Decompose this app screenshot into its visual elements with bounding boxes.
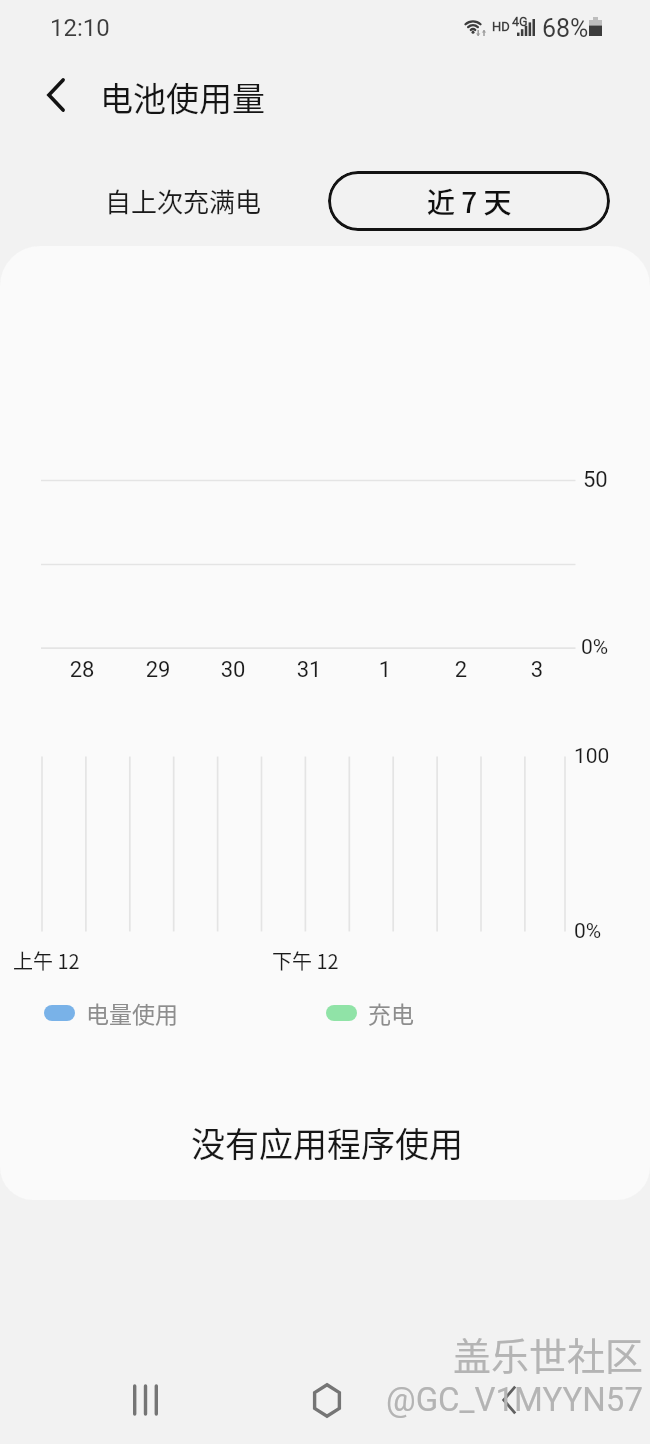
staticText: 电池使用量 [100,73,265,121]
staticText: 0% [574,919,602,944]
staticText: 充电 [368,996,414,1029]
staticText: 100 [574,744,610,769]
staticText: 2 [401,657,521,683]
staticText: 12:10 [50,14,110,42]
staticText: 自上次充满电 [105,182,262,220]
button[interactable]: 近 7 天 [328,171,610,231]
staticText: 31 [249,657,369,683]
button[interactable]: Back [24,63,88,127]
staticText: 上午 12 [13,946,80,975]
staticText: 盖乐世社区 [453,1326,644,1381]
staticText: 近 7 天 [427,181,512,222]
staticText: 3 [477,657,597,683]
other: Wi-Fi [460,14,490,38]
staticText: @GC_V1MYYN57 [386,1380,643,1419]
staticText: 1 [325,657,445,683]
staticText: 0% [581,635,609,660]
staticText: 68% [542,14,589,43]
button[interactable]: Home [289,1362,365,1438]
staticText: 28 [22,657,142,683]
button[interactable]: Back [471,1362,547,1438]
button[interactable]: 自上次充满电 [105,182,262,220]
button[interactable]: Recent apps [107,1362,183,1438]
staticText: 电量使用 [86,996,178,1029]
staticText: 29 [98,657,218,683]
staticText: 50 [583,467,608,493]
staticText: 下午 12 [272,946,339,975]
staticText: HD [492,19,510,34]
staticText: 没有应用程序使用 [157,1118,497,1167]
staticText: 30 [173,657,293,683]
staticText: 4G [512,14,528,29]
